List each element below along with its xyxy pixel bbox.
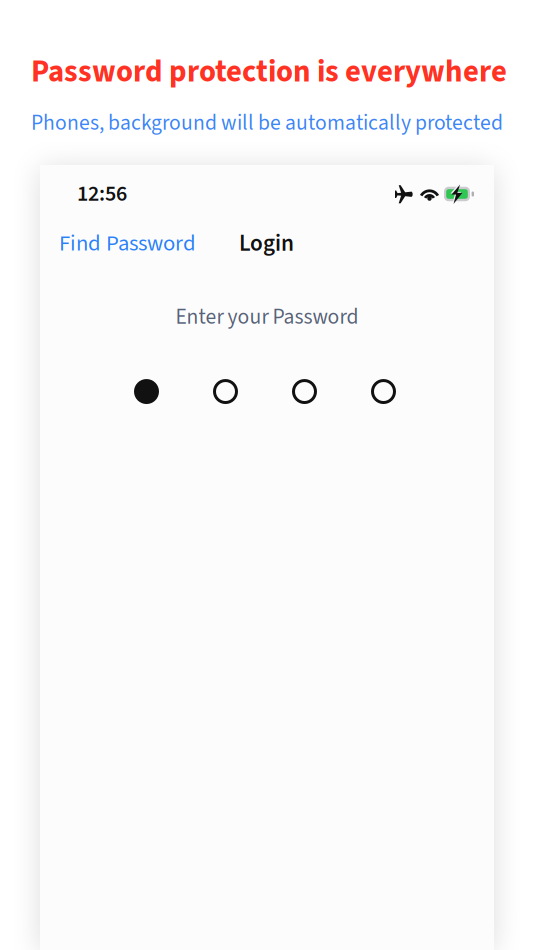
button[interactable]: Login: [234, 220, 299, 267]
staticText: Login: [239, 227, 294, 260]
staticText: Password protection is everywhere: [31, 50, 507, 94]
staticText: Phones, background will be automatically…: [31, 108, 503, 138]
button[interactable]: Find Password: [54, 220, 201, 267]
staticText: Find Password: [59, 227, 196, 260]
staticText: Enter your Password: [175, 302, 358, 332]
staticText: 12:56: [77, 178, 127, 210]
